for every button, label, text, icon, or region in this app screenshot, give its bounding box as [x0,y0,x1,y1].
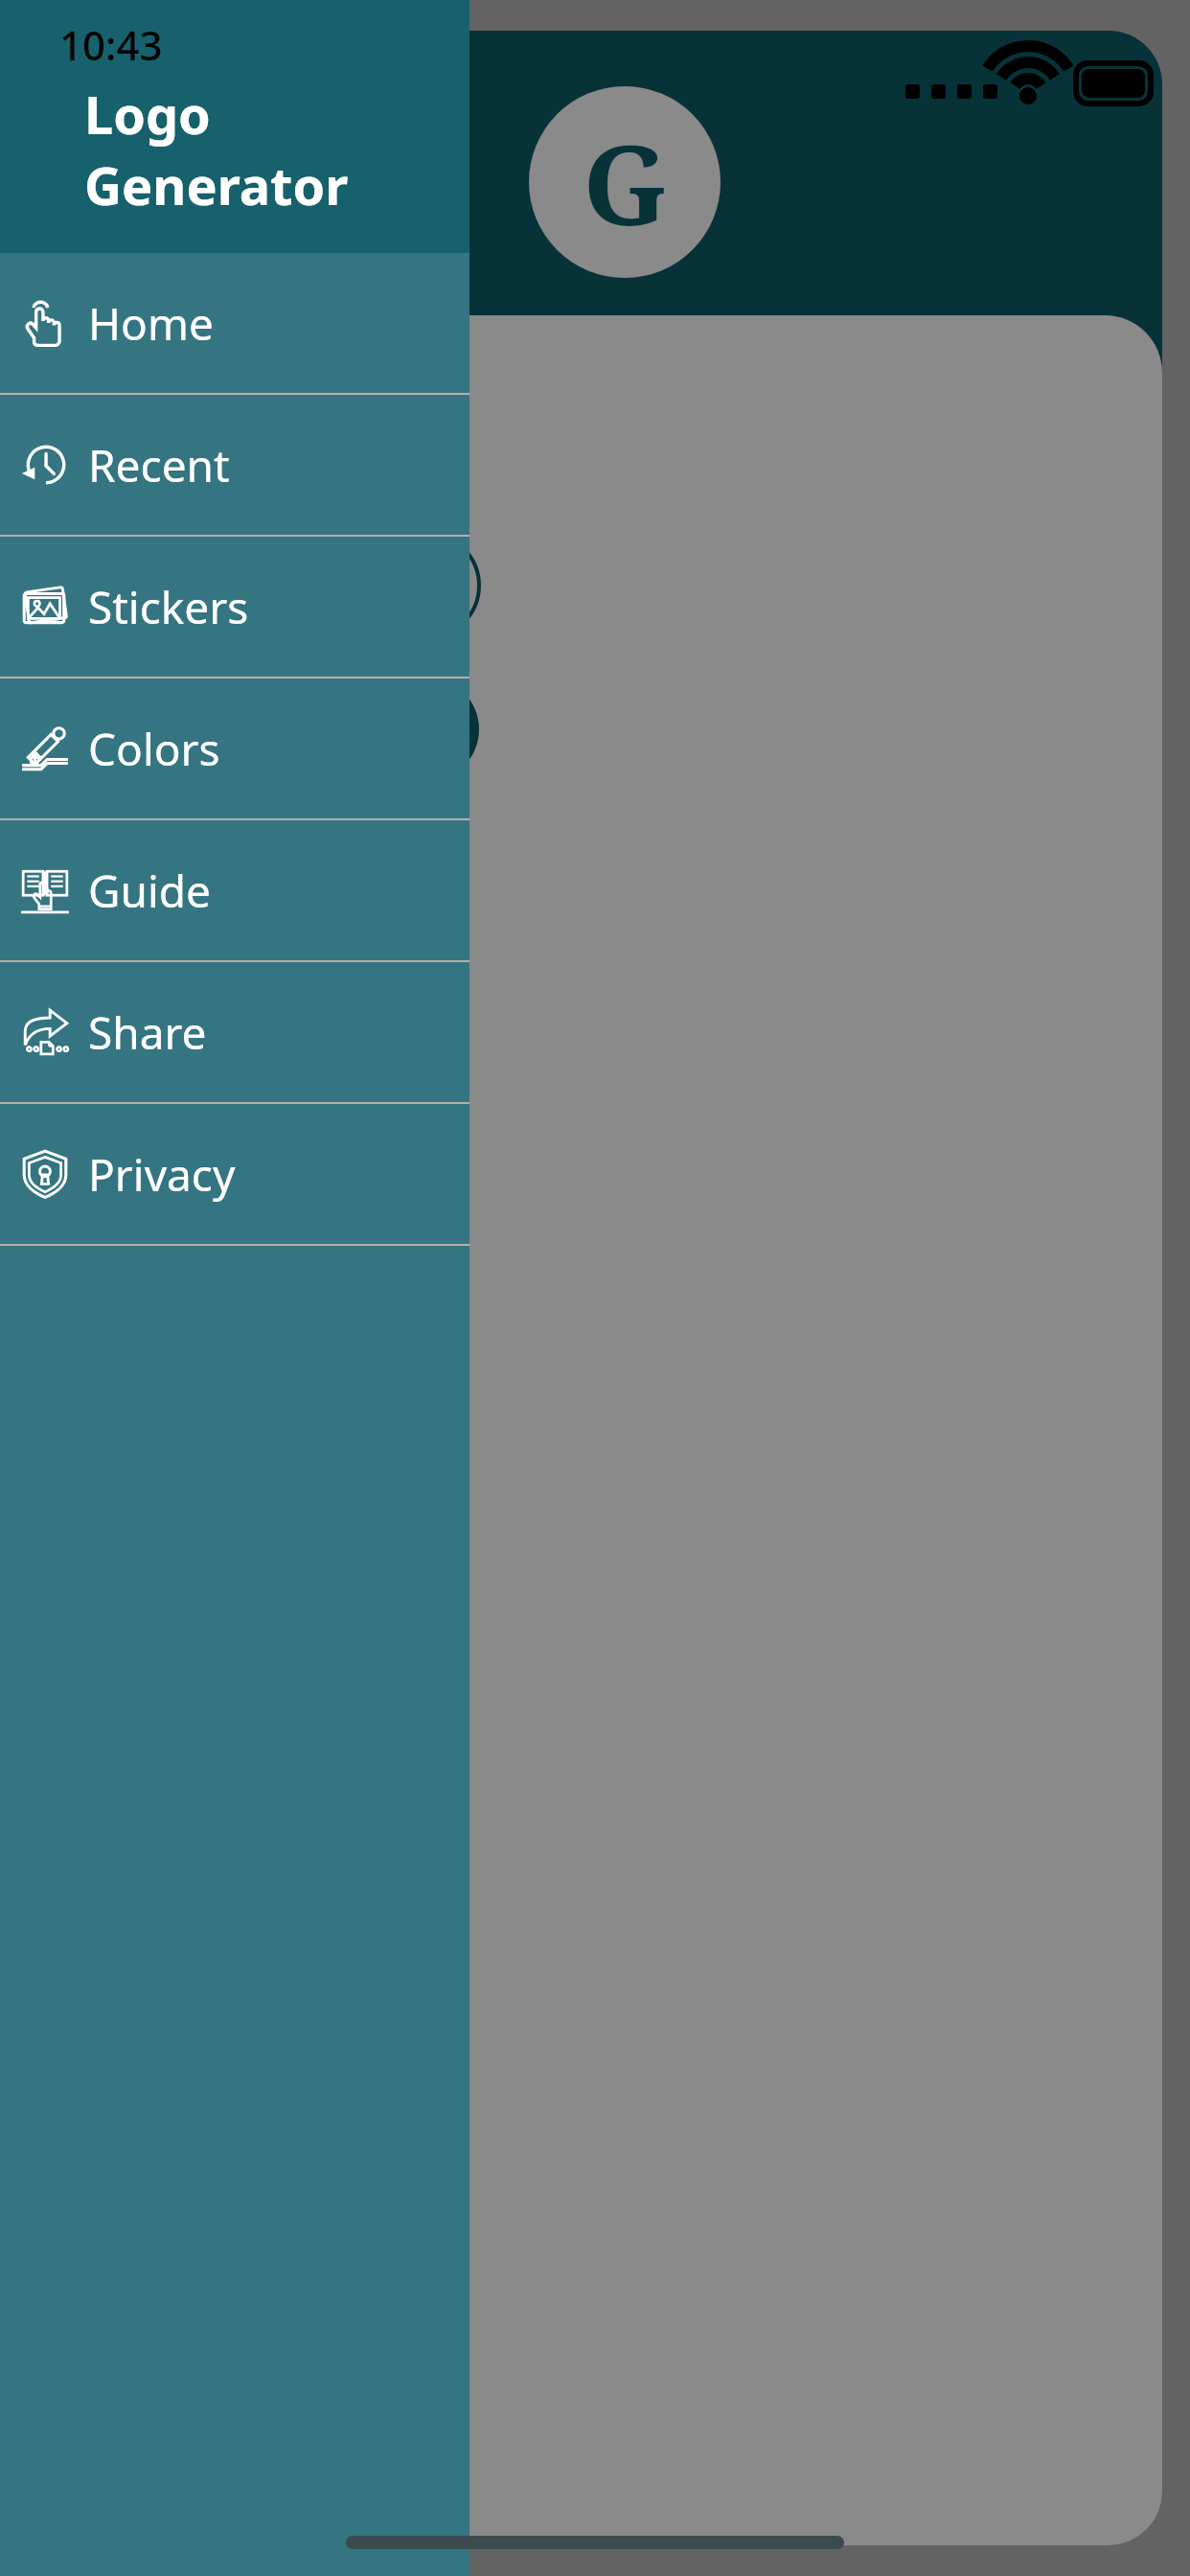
button[interactable]: Share [0,962,469,1102]
staticText: Colors [88,719,220,779]
staticText: Create Logo [66,702,299,757]
button[interactable]: Privacy [0,1104,469,1244]
staticText: Privacy [88,1144,236,1205]
button[interactable]: Home [0,253,469,393]
button[interactable]: Stickers [0,537,469,677]
button[interactable]: Recent [0,395,469,535]
staticText: Logo Generator [84,79,469,220]
staticText: G [583,107,668,258]
staticText: Share [88,1002,207,1063]
button[interactable]: Guide [0,820,469,960]
staticText: Stickers [88,577,249,637]
staticText: 10:43 [59,17,163,72]
button[interactable]: Colors [0,678,469,818]
staticText: Recent [88,435,230,495]
staticText: Guide [88,861,212,921]
staticText: Home [88,293,214,354]
